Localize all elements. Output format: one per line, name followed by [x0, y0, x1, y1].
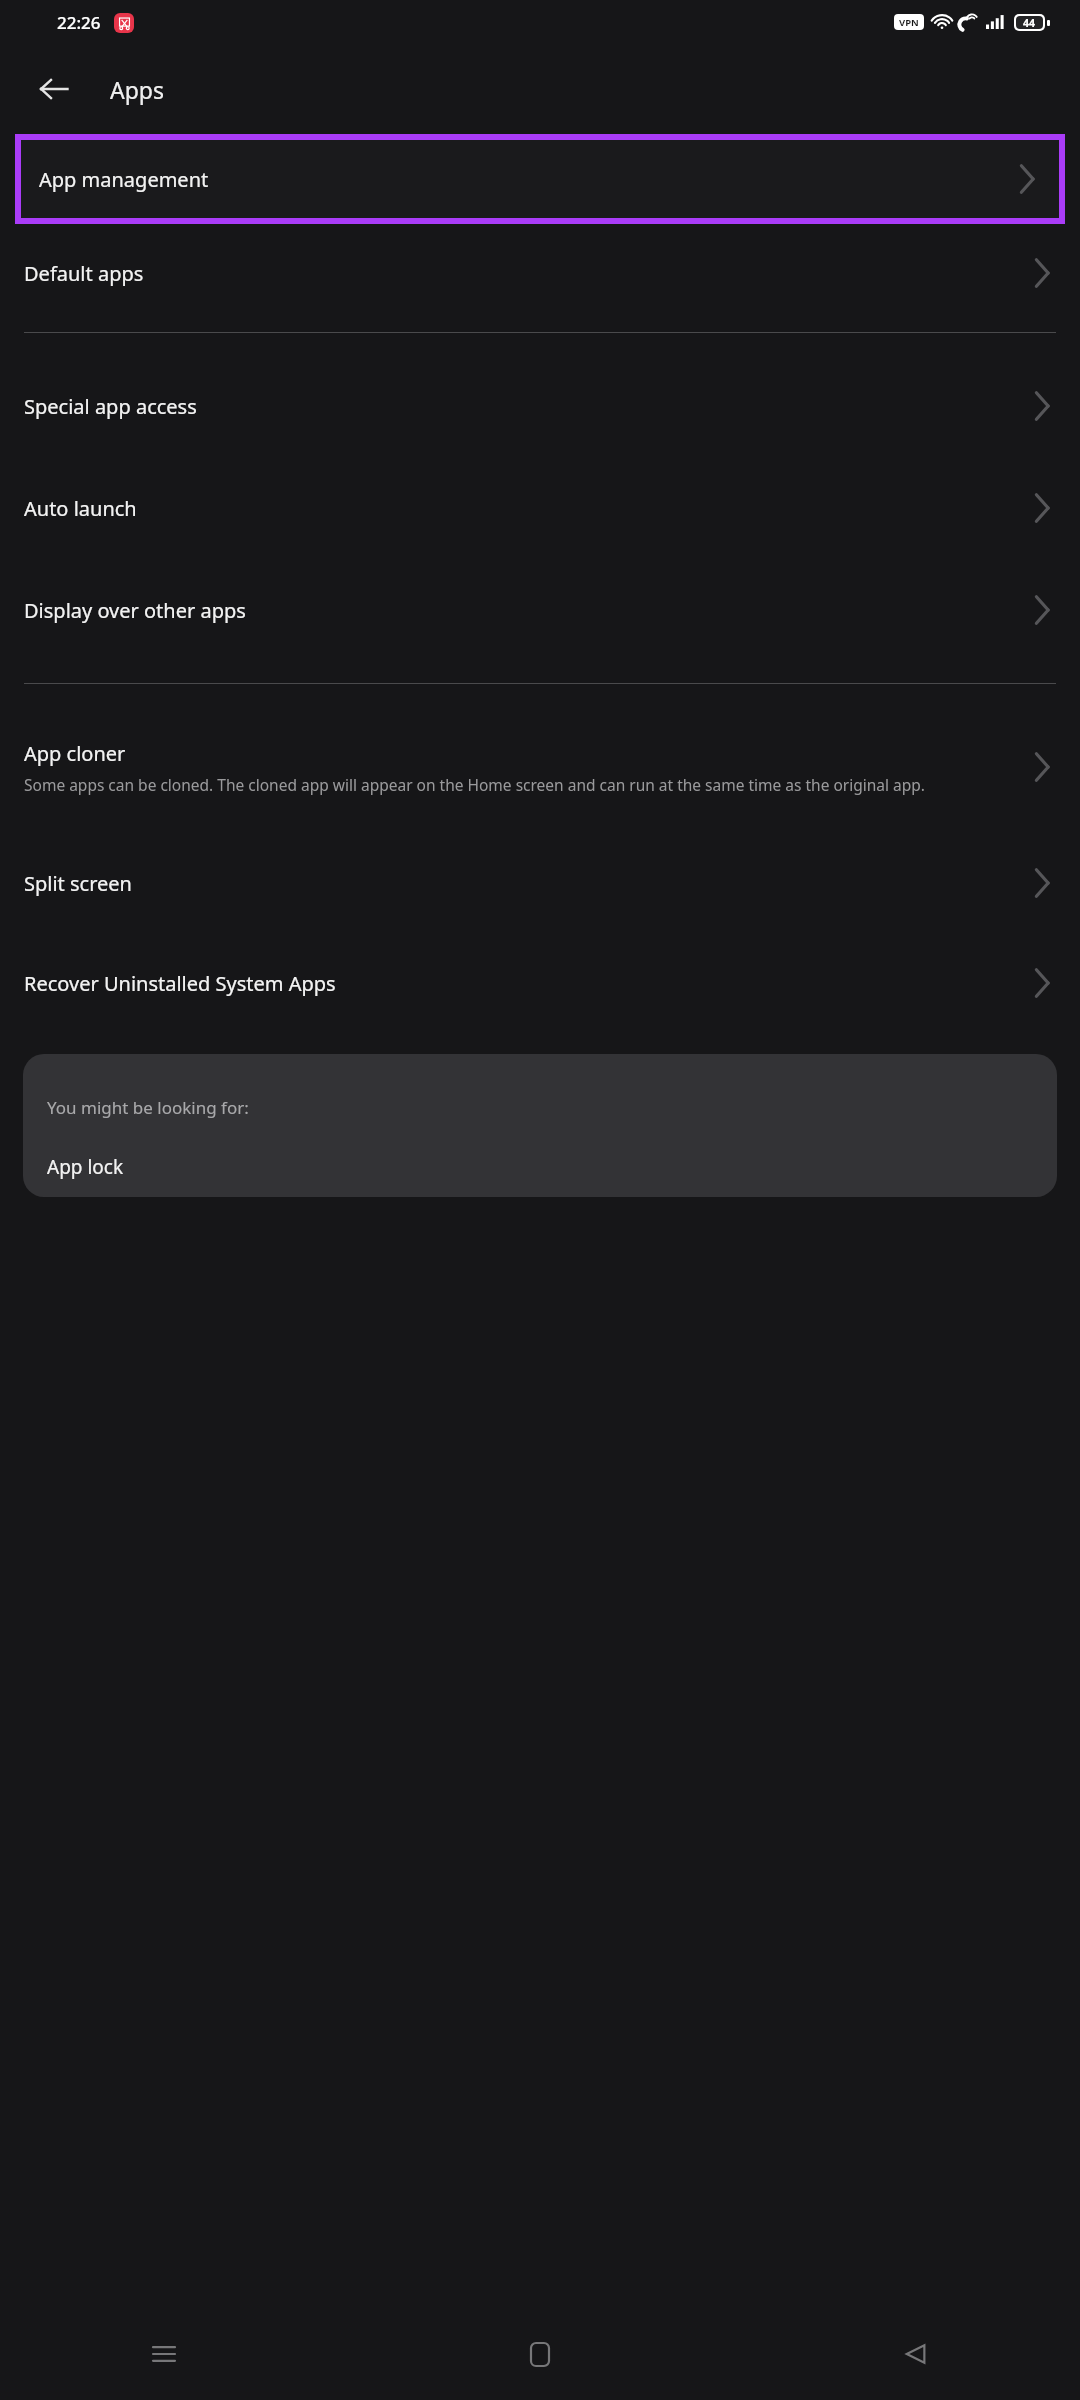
staticText: 44 — [1023, 16, 1036, 29]
staticText: App cloner — [24, 740, 126, 767]
button[interactable]: App lock — [23, 1142, 1057, 1192]
staticText: Split screen — [24, 870, 132, 897]
staticText: Display over other apps — [24, 597, 246, 624]
button[interactable]: Default apps — [0, 224, 1080, 322]
button[interactable]: Recent apps — [134, 2324, 194, 2384]
button[interactable]: Recover Uninstalled System Apps — [0, 950, 1080, 1016]
staticText: Some apps can be cloned. The cloned app … — [24, 774, 925, 795]
staticText: 22:26 — [57, 11, 101, 34]
button[interactable]: Auto launch — [0, 457, 1080, 559]
staticText: App lock — [47, 1154, 124, 1180]
staticText: Recover Uninstalled System Apps — [24, 970, 336, 997]
button[interactable]: Back — [886, 2324, 946, 2384]
staticText: Special app access — [24, 393, 197, 420]
staticText: App management — [39, 166, 1013, 193]
button[interactable]: Split screen — [0, 850, 1080, 916]
staticText: Default apps — [24, 260, 144, 287]
staticText: Auto launch — [24, 495, 137, 522]
button[interactable]: Special app access — [0, 355, 1080, 457]
staticText: You might be looking for: — [47, 1096, 249, 1119]
button[interactable]: App cloner — [0, 702, 1080, 832]
button[interactable]: App management — [21, 140, 1059, 218]
staticText: VPN — [899, 16, 919, 29]
staticText: Apps — [110, 74, 165, 105]
button[interactable]: Display over other apps — [0, 559, 1080, 661]
button[interactable]: Back — [26, 61, 82, 117]
button[interactable]: Home — [510, 2324, 570, 2384]
